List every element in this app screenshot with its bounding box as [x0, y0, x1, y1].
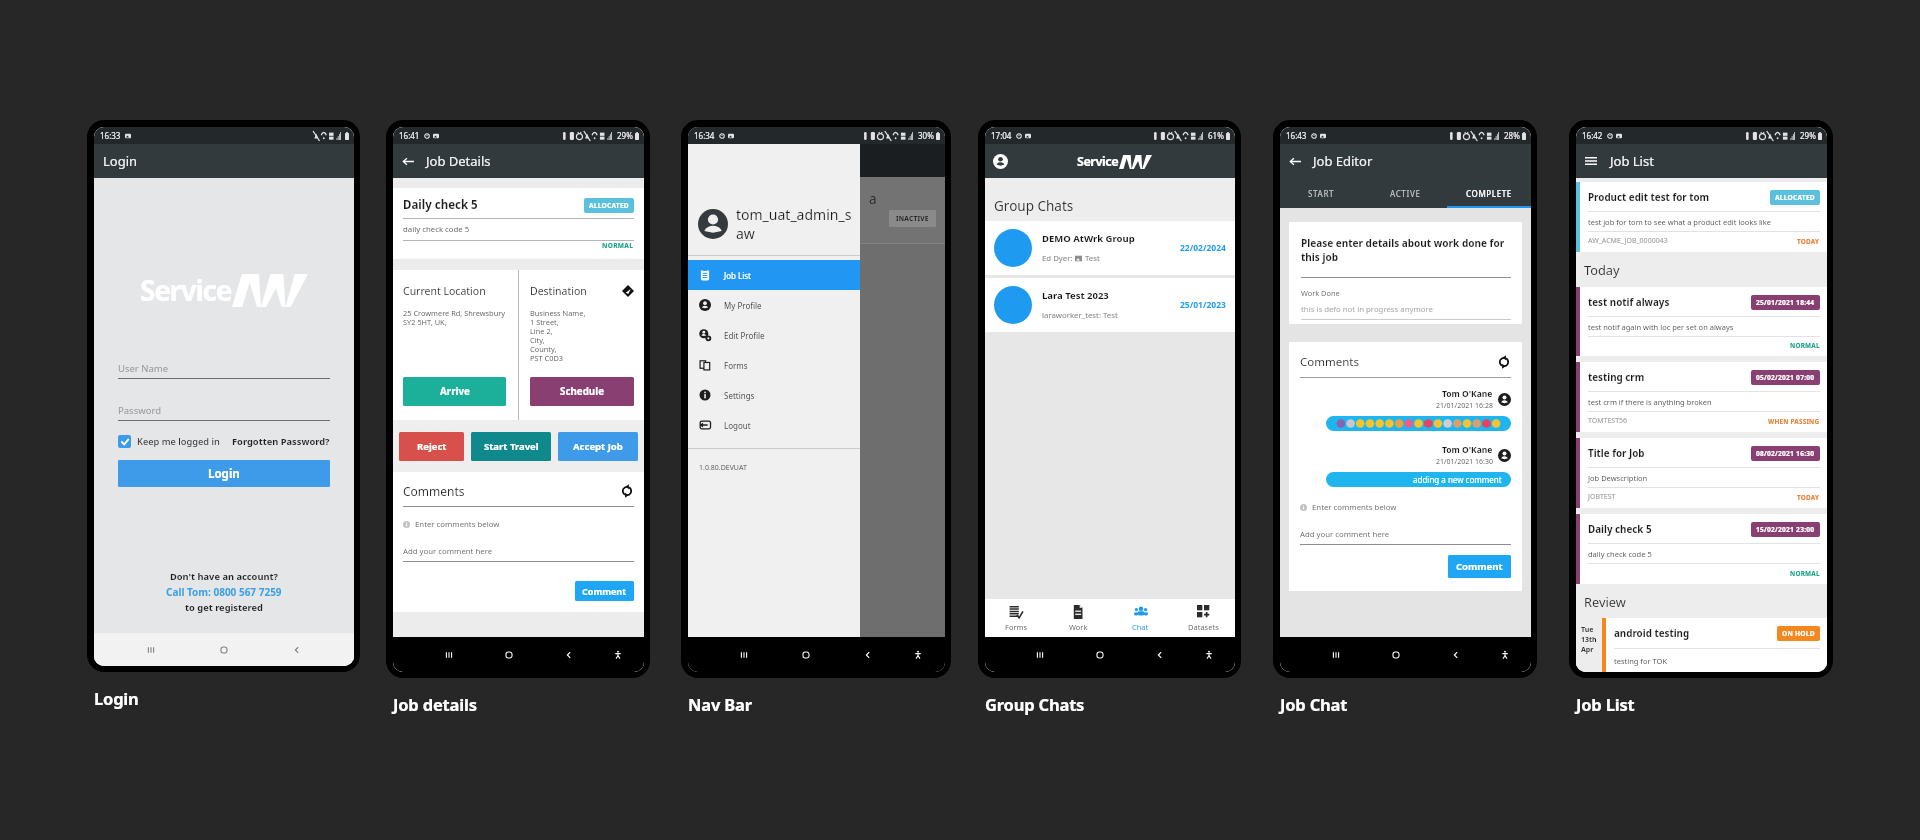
button[interactable]: Comment — [575, 581, 634, 601]
button[interactable]: Back — [400, 153, 417, 170]
button[interactable]: ACTIVE — [1363, 178, 1447, 208]
button[interactable]: Job List — [688, 260, 860, 290]
button[interactable]: Schedule — [530, 377, 634, 406]
staticText: Comments — [403, 483, 465, 499]
button[interactable]: Forgotten Password? — [232, 435, 330, 448]
staticText: Enter comments below — [415, 519, 500, 530]
staticText: 22/02/2024 — [1180, 242, 1226, 254]
button[interactable]: Account — [993, 154, 1008, 169]
staticText: testing for TOK — [1614, 656, 1668, 666]
staticText: NORMAL — [602, 241, 634, 250]
staticText: 13th — [1581, 635, 1597, 645]
button[interactable]: Edit Profile — [688, 320, 860, 350]
staticText: Accept Job — [573, 440, 623, 453]
staticText: Login — [94, 687, 139, 709]
staticText: a — [869, 190, 877, 208]
button[interactable]: COMPLETE — [1447, 178, 1531, 208]
staticText: daily check code 5 — [403, 224, 470, 235]
staticText: Reject — [417, 440, 447, 453]
button[interactable]: Datasets — [1172, 599, 1235, 637]
staticText: 1.0.80.DEVUAT — [699, 463, 747, 473]
staticText: 16:42 — [1582, 130, 1603, 141]
button[interactable]: Arrive — [403, 377, 506, 406]
staticText: 21/01/2021 16:30 — [1436, 457, 1493, 467]
button[interactable]: testing crm — [1576, 362, 1827, 432]
staticText: ON HOLD — [1782, 629, 1815, 638]
button[interactable]: Chat — [1109, 599, 1172, 637]
staticText: Service — [1077, 153, 1119, 170]
staticText: Login — [103, 152, 138, 170]
staticText: test crm if there is anything broken — [1588, 397, 1712, 407]
staticText: Comment — [582, 585, 627, 597]
staticText: TODAY — [1797, 237, 1820, 246]
staticText: 17:04 — [991, 130, 1012, 141]
button[interactable]: Login — [118, 460, 330, 487]
staticText: test job for tom to see what a product e… — [1588, 217, 1772, 227]
button[interactable]: Lara Test 2023 — [985, 278, 1235, 332]
button[interactable]: Title for Job — [1576, 438, 1827, 508]
button[interactable]: Reject — [399, 432, 464, 461]
staticText: Tom O'Kane — [1442, 388, 1493, 400]
button[interactable]: Back — [1287, 153, 1304, 170]
staticText: Comments — [1300, 354, 1359, 370]
staticText: DEMO AtWrk Group — [1042, 232, 1135, 245]
staticText: TOMTEST56 — [1588, 416, 1628, 426]
staticText: Don't have an account? — [170, 570, 278, 583]
staticText: test notif again with loc per set on alw… — [1588, 322, 1734, 332]
button[interactable]: DEMO AtWrk Group — [985, 221, 1235, 275]
button[interactable]: Logout — [688, 410, 860, 440]
staticText: 16:41 — [399, 130, 420, 141]
staticText: android testing — [1614, 627, 1690, 640]
staticText: JOBTEST — [1588, 492, 1616, 502]
staticText: 25/01/2023 — [1180, 299, 1226, 311]
staticText: Daily check 5 — [1588, 523, 1652, 536]
staticText: AW_ACME_JOB_0000043 — [1588, 236, 1668, 246]
staticText: Daily check 5 — [403, 197, 478, 213]
button[interactable]: Start Travel — [471, 432, 551, 461]
button[interactable]: Menu — [1585, 155, 1597, 167]
staticText: INACTIVE — [896, 214, 929, 223]
button[interactable]: Daily check 5 — [1576, 514, 1827, 584]
button[interactable]: START — [1280, 178, 1363, 208]
staticText: Group Chats — [994, 197, 1074, 215]
button[interactable]: Forms — [688, 350, 860, 380]
button[interactable]: Navigate — [622, 285, 634, 297]
staticText: ACTIVE — [1390, 188, 1421, 199]
staticText: Password — [118, 404, 161, 417]
staticText: Work — [1069, 622, 1088, 632]
button[interactable]: Forms — [985, 599, 1047, 637]
staticText: Ed Dyer: — [1042, 253, 1075, 264]
button[interactable]: Refresh — [1497, 355, 1511, 369]
staticText: tom_uat_admin_s aw — [736, 205, 854, 243]
staticText: Job Chat — [1280, 693, 1348, 715]
staticText: WHEN PASSING — [1768, 417, 1820, 426]
staticText: Datasets — [1188, 622, 1219, 632]
button[interactable]: Comment — [1448, 555, 1511, 578]
button[interactable]: Call Tom: 0800 567 7259 — [166, 585, 282, 599]
button[interactable]: Refresh — [620, 484, 634, 498]
button[interactable]: test notif always — [1576, 287, 1827, 356]
staticText: 16:33 — [100, 130, 121, 141]
staticText: 05/02/2021 07:00 — [1756, 373, 1815, 382]
staticText: Test — [1085, 253, 1100, 264]
button[interactable]: My Profile — [688, 290, 860, 320]
staticText: Comment — [1456, 560, 1503, 573]
button[interactable]: Accept Job — [558, 432, 638, 461]
button[interactable]: Tue — [1576, 618, 1827, 672]
staticText: Group Chats — [985, 693, 1085, 715]
button[interactable]: Product edit test for tom — [1576, 182, 1827, 252]
staticText: Forms — [1005, 622, 1028, 632]
staticText: Please enter details about work done for… — [1301, 236, 1511, 264]
staticText: this is defo not in progress anymore — [1301, 304, 1433, 315]
staticText: Current Location — [403, 284, 486, 298]
staticText: 21/01/2021 16:28 — [1436, 401, 1493, 411]
staticText: test notif always — [1588, 296, 1670, 309]
staticText: NORMAL — [1790, 341, 1820, 350]
button[interactable]: Work — [1047, 599, 1109, 637]
button[interactable]: Settings — [688, 380, 860, 410]
staticText: Product edit test for tom — [1588, 191, 1710, 204]
staticText: Login — [208, 466, 240, 482]
staticText: testing crm — [1588, 371, 1645, 384]
button[interactable] — [118, 435, 131, 448]
staticText: Settings — [724, 390, 755, 401]
